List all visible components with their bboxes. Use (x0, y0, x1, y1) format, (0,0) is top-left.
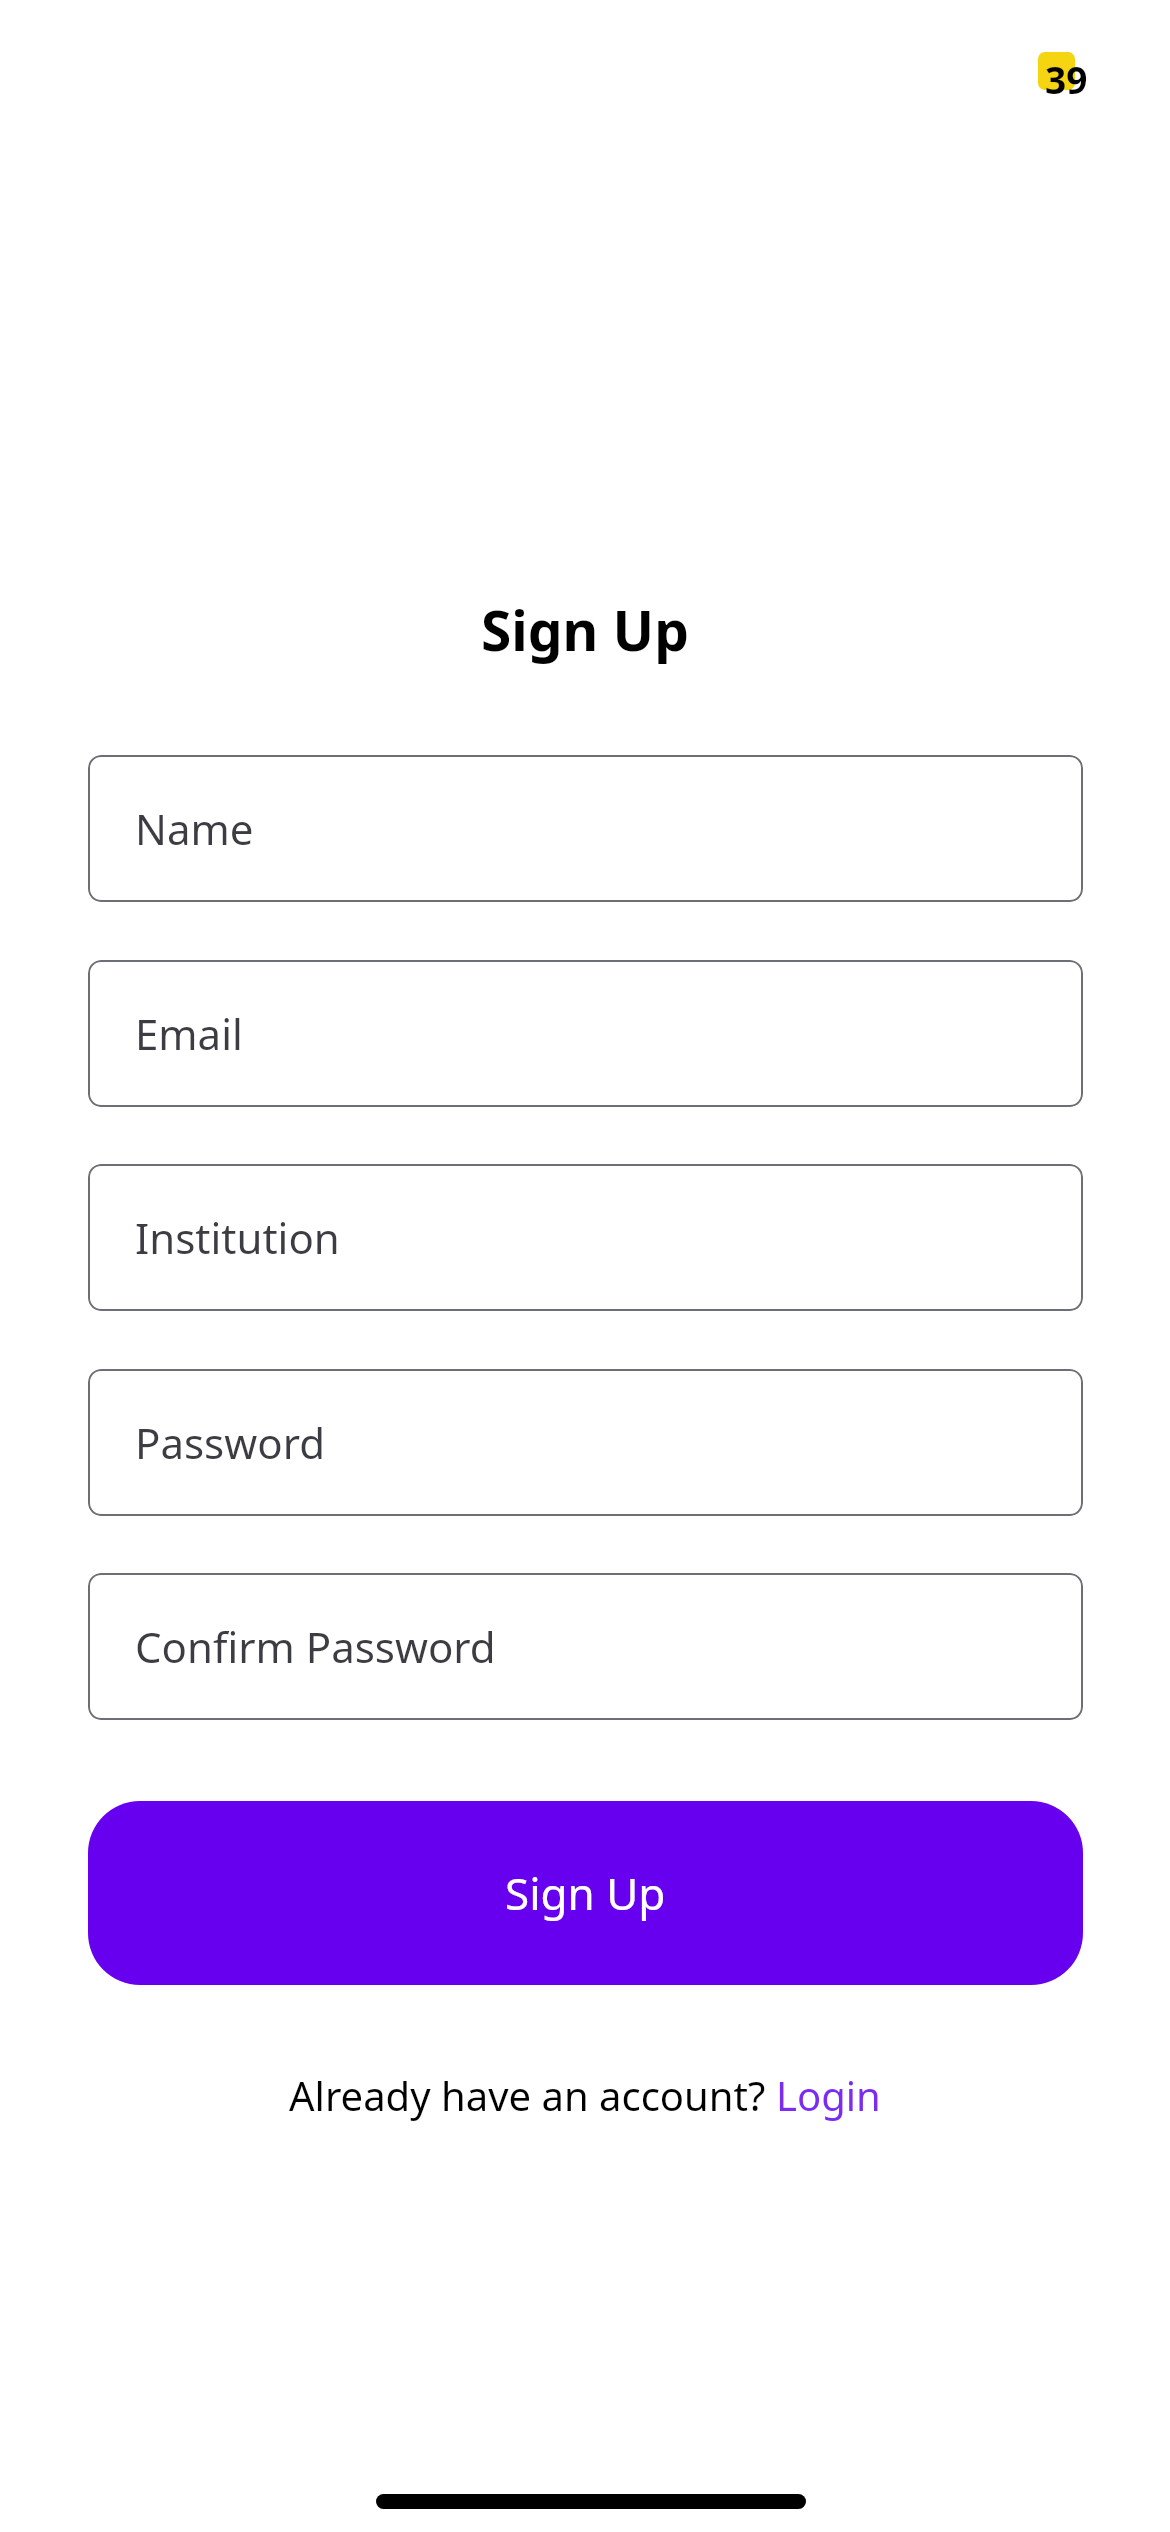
staticText: Already have an account? (289, 2068, 776, 2122)
button[interactable]: Password (88, 1369, 1083, 1516)
button[interactable]: Confirm Password (88, 1573, 1083, 1720)
button[interactable]: Email (88, 960, 1083, 1107)
staticText: Confirm Password (135, 1618, 496, 1675)
button[interactable]: Name (88, 755, 1083, 902)
button[interactable]: Login (776, 2068, 881, 2122)
button[interactable]: Sign Up (88, 1801, 1083, 1985)
staticText: Sign Up (505, 1863, 666, 1923)
staticText: Email (135, 1005, 243, 1062)
staticText: Sign Up (481, 592, 689, 667)
staticText: Institution (135, 1209, 340, 1266)
staticText: Password (135, 1414, 325, 1471)
staticText: Name (135, 800, 254, 857)
staticText: Login (776, 2068, 881, 2122)
button[interactable]: Institution (88, 1164, 1083, 1311)
staticText: 39 (1045, 54, 1088, 104)
other: Home indicator (376, 2494, 806, 2509)
